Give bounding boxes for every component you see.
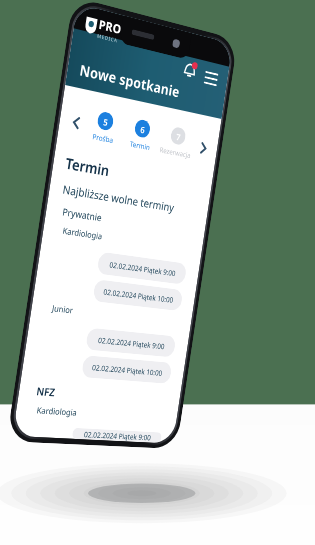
staticText: PRO <box>98 15 122 37</box>
staticText: 7 <box>175 130 182 143</box>
button[interactable]: 02.02.2024 Piątek 10:00 <box>81 355 172 384</box>
staticText: 02.02.2024 Piątek 9:00 <box>83 429 152 443</box>
button[interactable]: 02.02.2024 Piątek 9:00 <box>96 251 187 285</box>
staticText: Junior <box>51 302 74 316</box>
button[interactable]: Menu <box>202 64 220 87</box>
staticText: 5 <box>102 115 109 128</box>
staticText: 02.02.2024 Piątek 9:00 <box>109 260 177 278</box>
staticText: Termin <box>129 139 151 152</box>
staticText: 6 <box>140 123 146 136</box>
button[interactable]: Next step <box>193 135 213 160</box>
staticText: Prośba <box>91 131 114 145</box>
button[interactable]: 6 <box>120 116 161 154</box>
staticText: Termin <box>64 153 111 181</box>
button[interactable]: 02.02.2024 Piątek 9:00 <box>72 428 162 443</box>
staticText: Rezerwacja <box>159 144 192 160</box>
staticText: Kardiologia <box>36 404 78 418</box>
staticText: NFZ <box>35 384 57 400</box>
staticText: MEDICA <box>97 32 118 44</box>
button[interactable]: 02.02.2024 Piątek 10:00 <box>92 279 183 311</box>
button[interactable]: 02.02.2024 Piątek 9:00 <box>85 327 176 358</box>
staticText: Prywatnie <box>61 205 103 225</box>
staticText: 02.02.2024 Piątek 10:00 <box>91 362 163 378</box>
button[interactable]: 7 <box>157 124 196 161</box>
staticText: Najbliższe wolne terminy <box>62 181 176 215</box>
staticText: Nowe spotkanie <box>78 59 182 102</box>
staticText: 02.02.2024 Piątek 9:00 <box>97 335 166 351</box>
button[interactable]: Notifications <box>179 57 200 83</box>
button[interactable]: Previous step <box>64 109 88 135</box>
button[interactable]: 5 <box>84 108 125 147</box>
staticText: Kardiologia <box>62 225 104 242</box>
staticText: 02.02.2024 Piątek 10:00 <box>103 287 174 305</box>
